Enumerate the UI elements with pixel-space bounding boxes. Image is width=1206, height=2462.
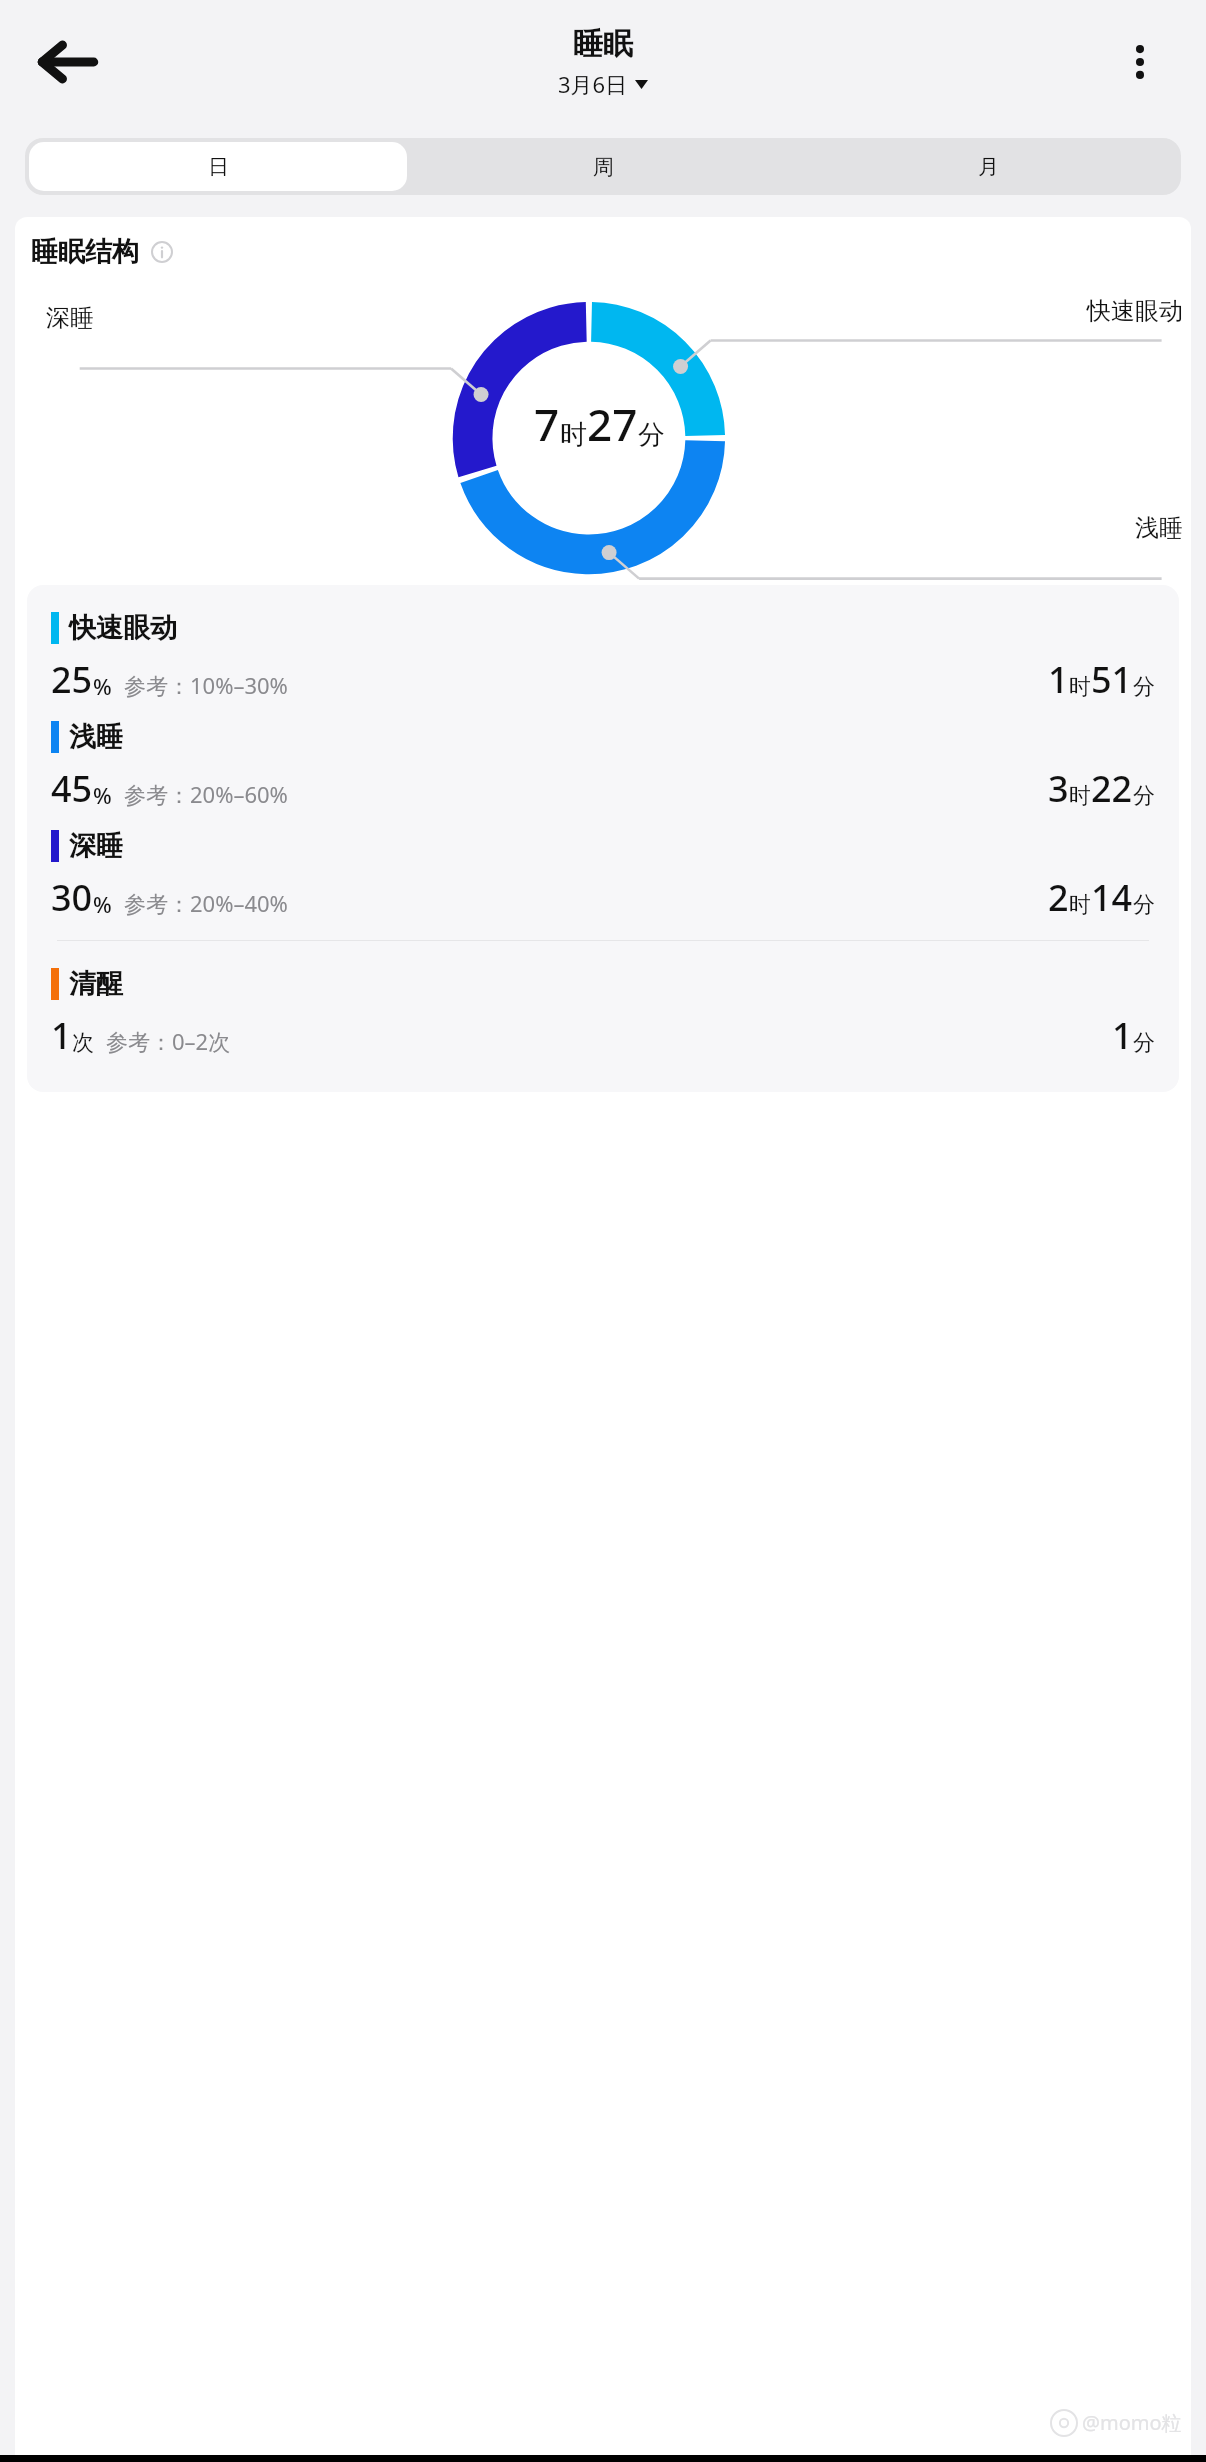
staticText: 日 <box>208 154 229 180</box>
button[interactable]: More options <box>1112 34 1168 90</box>
staticText: 参考：20%–40% <box>124 888 288 918</box>
staticText: 3 <box>1048 764 1069 813</box>
staticText: 时 <box>1069 673 1091 701</box>
staticText: 25 <box>51 655 93 704</box>
staticText: 参考：10%–30% <box>124 670 288 700</box>
staticText: 参考：0–2次 <box>106 1026 231 1056</box>
staticText: 参考：20%–60% <box>124 779 288 809</box>
button[interactable]: 周 <box>415 142 792 191</box>
staticText: % <box>93 889 112 919</box>
staticText: 睡眠 <box>573 25 633 63</box>
staticText: 时 <box>1069 891 1091 919</box>
button[interactable]: 浅睡 <box>51 720 1155 813</box>
staticText: 22 <box>1091 764 1133 813</box>
staticText: 深睡 <box>46 303 94 333</box>
staticText: % <box>93 780 112 810</box>
staticText: 清醒 <box>69 967 123 1001</box>
staticText: 7 <box>534 394 560 454</box>
staticText: 次 <box>72 1029 94 1057</box>
button[interactable]: 月 <box>800 142 1177 191</box>
button[interactable]: Back <box>34 28 102 96</box>
staticText: @momo粒 <box>1082 2409 1182 2436</box>
staticText: 浅睡 <box>1135 513 1183 543</box>
button[interactable]: 3月6日 <box>558 69 648 99</box>
staticText: 1 <box>1048 655 1069 704</box>
staticText: 30 <box>51 873 93 922</box>
staticText: 快速眼动 <box>1087 296 1183 326</box>
staticText: 分 <box>1133 891 1155 919</box>
staticText: 月 <box>978 154 999 180</box>
staticText: 2 <box>1048 873 1069 922</box>
staticText: 睡眠结构 <box>31 235 139 269</box>
staticText: 周 <box>593 154 614 180</box>
staticText: 1 <box>1112 1011 1133 1060</box>
staticText: 14 <box>1091 873 1133 922</box>
staticText: 时 <box>560 418 587 452</box>
button[interactable]: 清醒 <box>51 967 1155 1060</box>
staticText: 51 <box>1091 655 1133 704</box>
staticText: 分 <box>1133 673 1155 701</box>
staticText: 深睡 <box>69 829 123 863</box>
button[interactable]: 深睡 <box>51 829 1155 922</box>
button[interactable]: 睡眠结构 <box>31 235 173 269</box>
staticText: 时 <box>1069 782 1091 810</box>
staticText: 浅睡 <box>69 720 123 754</box>
button[interactable]: 日 <box>29 142 407 191</box>
staticText: 3月6日 <box>558 69 628 99</box>
staticText: 分 <box>1133 1029 1155 1057</box>
staticText: 分 <box>1133 782 1155 810</box>
staticText: 27 <box>587 394 638 454</box>
button[interactable]: 快速眼动 <box>51 611 1155 704</box>
staticText: % <box>93 671 112 701</box>
staticText: 快速眼动 <box>69 611 177 645</box>
staticText: 1 <box>51 1011 72 1060</box>
staticText: 45 <box>51 764 93 813</box>
staticText: 分 <box>638 418 665 452</box>
